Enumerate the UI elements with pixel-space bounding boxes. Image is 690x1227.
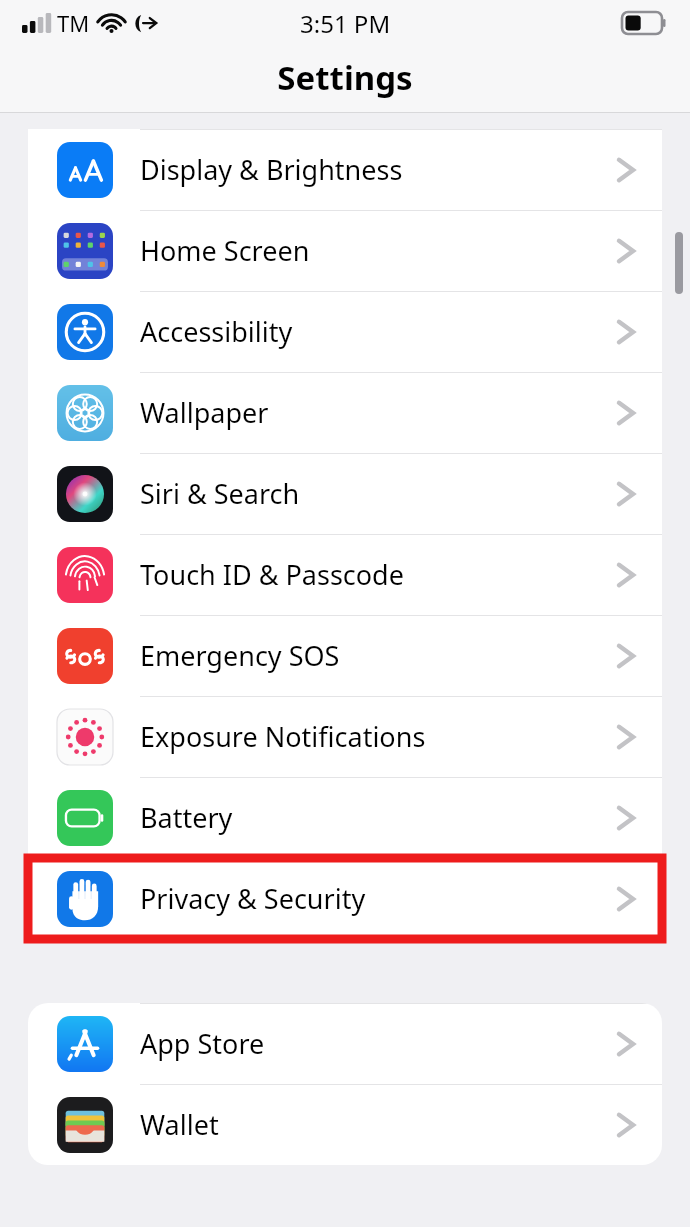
staticText: TM <box>57 8 90 38</box>
staticText: Battery <box>140 799 233 836</box>
staticText: Privacy & Security <box>140 880 366 917</box>
button[interactable]: Battery <box>28 777 662 858</box>
button[interactable]: Touch ID & Passcode <box>28 534 662 615</box>
staticText: Emergency SOS <box>140 637 340 674</box>
staticText: Exposure Notifications <box>140 718 426 755</box>
button[interactable]: Exposure Notifications <box>28 696 662 777</box>
staticText: 3:51 PM <box>300 7 391 40</box>
button[interactable]: Privacy & Security <box>28 858 662 939</box>
staticText: Touch ID & Passcode <box>140 556 404 593</box>
button[interactable]: Accessibility <box>28 291 662 372</box>
button[interactable]: Emergency SOS <box>28 615 662 696</box>
staticText: Accessibility <box>140 313 293 350</box>
staticText: Display & Brightness <box>140 151 403 188</box>
staticText: Siri & Search <box>140 475 300 512</box>
button[interactable]: Wallet <box>28 1084 662 1165</box>
staticText: Wallpaper <box>140 394 269 431</box>
button[interactable]: Siri & Search <box>28 453 662 534</box>
button[interactable]: Display & Brightness <box>28 129 662 210</box>
staticText: Settings <box>277 55 413 100</box>
button[interactable]: Home Screen <box>28 210 662 291</box>
staticText: Wallet <box>140 1106 219 1143</box>
button[interactable]: App Store <box>28 1003 662 1084</box>
staticText: Home Screen <box>140 232 310 269</box>
staticText: App Store <box>140 1025 265 1062</box>
button[interactable]: Wallpaper <box>28 372 662 453</box>
